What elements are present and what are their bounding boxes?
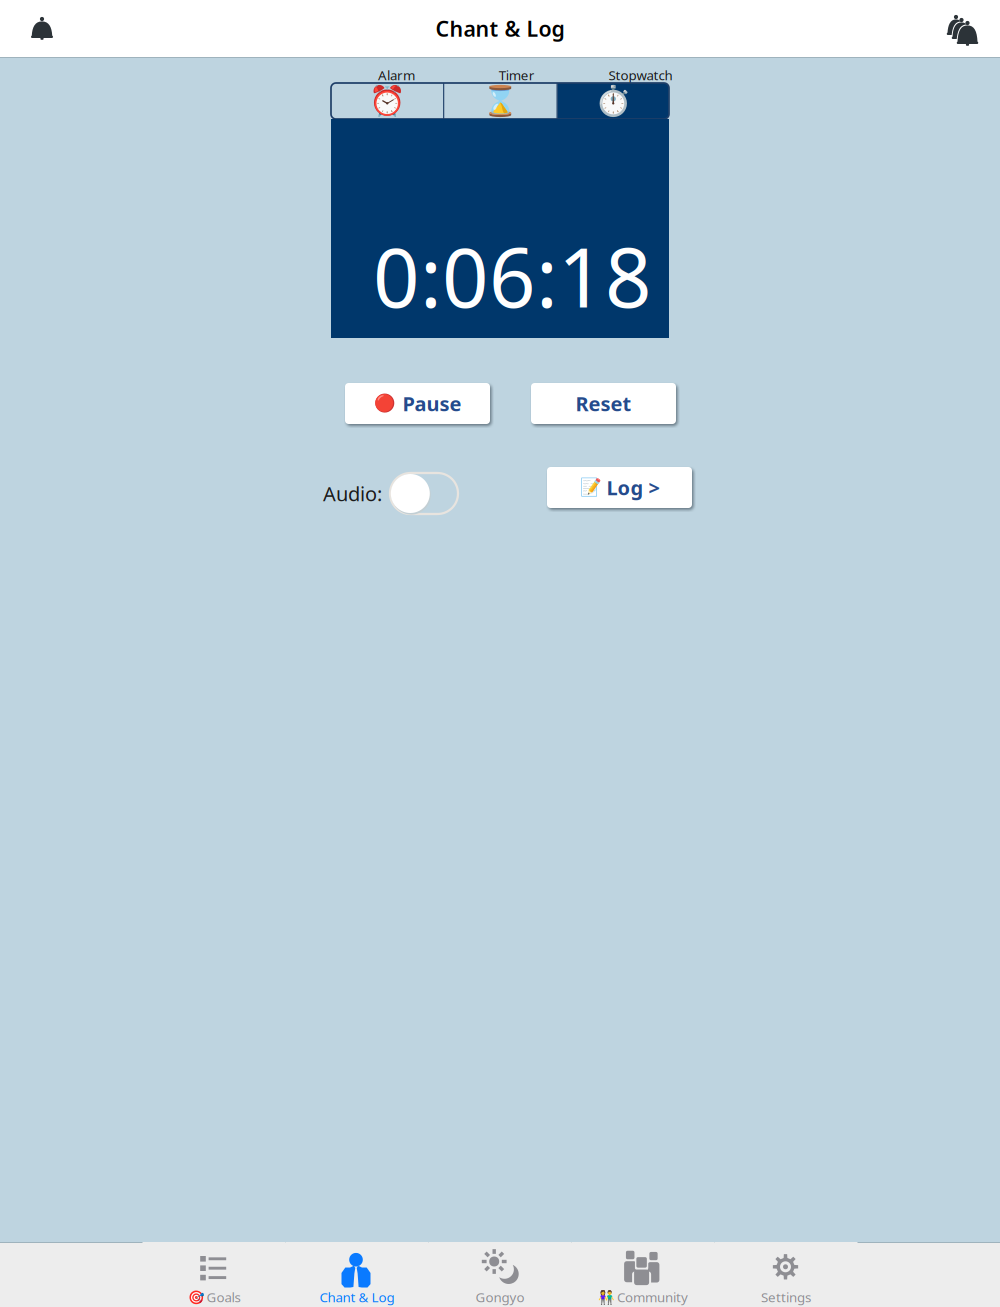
staticText: 📝 [579,478,601,497]
staticText: Pause [402,390,461,417]
button[interactable]: Reminder [14,0,70,56]
button[interactable]: Gongyo [428,1242,571,1307]
staticText: Stopwatch [609,66,673,84]
button[interactable]: 🔴 [345,383,490,424]
staticText: Log > [606,474,659,501]
staticText: Community [617,1288,688,1306]
button[interactable]: All reminders [930,0,986,56]
staticText: 🎯 [187,1289,204,1305]
button[interactable]: 📝 [547,467,692,508]
staticText: Timer [499,66,535,84]
staticText: ⏱️ [595,84,632,118]
staticText: ⌛ [482,84,519,118]
staticText: Goals [206,1288,240,1306]
button[interactable]: ⌛ [444,83,556,119]
staticText: 🔴 [373,394,395,413]
staticText: Alarm [378,66,415,84]
staticText: ⏰ [369,84,406,118]
button[interactable]: 🎯 [142,1242,285,1307]
button[interactable]: 👫 [571,1242,714,1307]
staticText: Settings [761,1288,811,1306]
button[interactable]: Chant & Log [285,1242,428,1307]
button[interactable]: Audio [390,473,458,514]
button[interactable]: Settings [714,1242,857,1307]
staticText: Gongyo [475,1288,524,1306]
button[interactable]: ⏰ [331,83,443,119]
button[interactable]: Reset [531,383,676,424]
staticText: 👫 [598,1289,615,1305]
staticText: Reset [575,390,631,417]
staticText: Chant & Log [435,14,564,43]
staticText: Audio: [323,480,382,507]
staticText: 0:06:18 [373,222,652,330]
staticText: Chant & Log [319,1288,394,1306]
button[interactable]: ⏱️ [558,83,669,119]
